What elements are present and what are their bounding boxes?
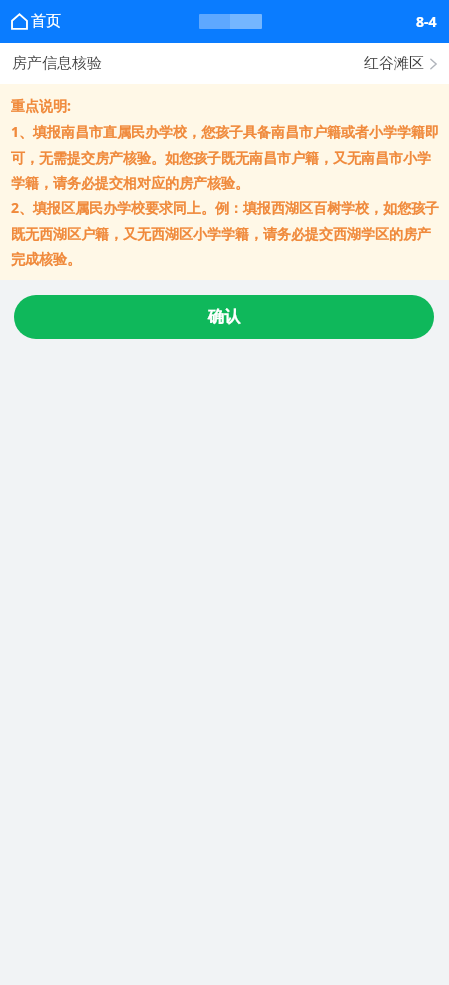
staticText: 8-4 xyxy=(416,12,437,31)
staticText: 确认 xyxy=(208,307,240,327)
staticText: 首页 xyxy=(31,12,61,31)
staticText: 重点说明: xyxy=(11,92,439,118)
button[interactable]: 确认 xyxy=(14,295,434,339)
staticText: 2、填报区属民办学校要求同上。例：填报西湖区百树学校，如您孩子既无西湖区户籍，又… xyxy=(11,194,439,270)
staticText: 红谷滩区 xyxy=(364,54,424,73)
button[interactable]: Home xyxy=(9,8,63,35)
other: Home xyxy=(11,13,28,30)
staticText: 房产信息核验 xyxy=(12,54,102,73)
button[interactable]: 红谷滩区 xyxy=(352,46,449,81)
staticText: 1、填报南昌市直属民办学校，您孩子具备南昌市户籍或者小学学籍即可，无需提交房产核… xyxy=(11,118,439,194)
